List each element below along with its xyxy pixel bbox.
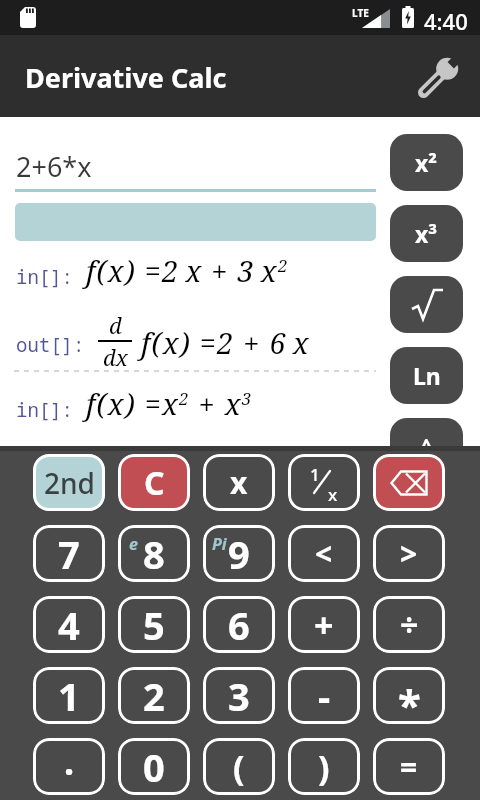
staticText: =	[400, 746, 418, 787]
staticText: x²	[415, 147, 438, 178]
button[interactable]: >	[373, 525, 445, 582]
staticText: *	[398, 675, 421, 724]
button[interactable]	[373, 454, 445, 511]
staticText: in[]:	[16, 397, 74, 423]
button[interactable]: 8	[118, 525, 190, 582]
staticText: f(x) =x2 + x3	[86, 384, 253, 423]
staticText: in[]:	[16, 264, 74, 290]
staticText: ÷	[400, 603, 419, 647]
button[interactable]: 7	[33, 525, 105, 582]
button[interactable]: <	[288, 525, 360, 582]
staticText: 2	[143, 670, 165, 722]
staticText: 1	[310, 463, 320, 486]
button[interactable]: 4	[33, 596, 105, 653]
staticText: 3	[228, 670, 250, 722]
button[interactable]: 1	[33, 667, 105, 724]
button[interactable]: 5	[118, 596, 190, 653]
staticText: )	[318, 744, 330, 790]
staticText: -	[318, 670, 331, 722]
button[interactable]: *	[373, 667, 445, 724]
staticText: f(x) =2 + 6 x	[141, 323, 310, 362]
staticText: 2nd	[44, 464, 95, 502]
staticText: 4:40	[424, 6, 468, 36]
staticText: dx	[103, 342, 128, 372]
staticText: ^	[420, 431, 434, 462]
button[interactable]: x	[203, 454, 275, 511]
button[interactable]: ^	[390, 418, 463, 475]
staticText: 5	[143, 599, 165, 651]
button[interactable]: 2	[118, 667, 190, 724]
button[interactable]: .	[33, 738, 105, 795]
staticText: C	[144, 461, 165, 505]
staticText: x	[328, 483, 338, 506]
button[interactable]: ÷	[373, 596, 445, 653]
staticText: 7	[58, 528, 80, 580]
button[interactable]: x²	[390, 134, 463, 191]
staticText: >	[400, 533, 418, 574]
staticText: .	[64, 738, 75, 786]
staticText: +	[314, 602, 334, 648]
button[interactable]: +	[288, 596, 360, 653]
staticText: Ln	[413, 360, 441, 391]
staticText: Derivative Calc	[25, 59, 227, 96]
staticText: d	[109, 310, 122, 340]
staticText: x³	[415, 218, 438, 249]
button[interactable]: C	[118, 454, 190, 511]
staticText: 8	[143, 528, 165, 580]
button[interactable]: 9	[203, 525, 275, 582]
button[interactable]: (	[203, 738, 275, 795]
button[interactable]: Ln	[390, 347, 463, 404]
staticText: Pi	[212, 533, 227, 555]
button[interactable]: 2nd	[33, 454, 105, 511]
staticText: 2+6*x	[16, 148, 92, 185]
button[interactable]: 0	[118, 738, 190, 795]
staticText: 1	[58, 670, 80, 722]
staticText: 9	[228, 528, 250, 580]
button[interactable]: x³	[390, 205, 463, 262]
staticText: f(x) =2 x + 3 x2	[86, 251, 289, 290]
button[interactable]: =	[373, 738, 445, 795]
staticText: 6	[228, 599, 250, 651]
button[interactable]: 3	[203, 667, 275, 724]
staticText: (	[233, 744, 245, 790]
staticText: x	[230, 462, 248, 503]
staticText: LTE	[352, 6, 369, 20]
staticText: out[]:	[16, 332, 85, 358]
button[interactable]: -	[288, 667, 360, 724]
staticText: 0	[143, 741, 165, 793]
button[interactable]: 6	[203, 596, 275, 653]
button[interactable]	[410, 55, 466, 101]
button[interactable]: )	[288, 738, 360, 795]
button[interactable]: 1	[288, 454, 360, 511]
button[interactable]	[390, 276, 463, 333]
button[interactable]: 2+6*x	[15, 142, 376, 192]
staticText: 4	[58, 599, 80, 651]
staticText: <	[315, 533, 333, 574]
staticText: e	[129, 533, 138, 555]
